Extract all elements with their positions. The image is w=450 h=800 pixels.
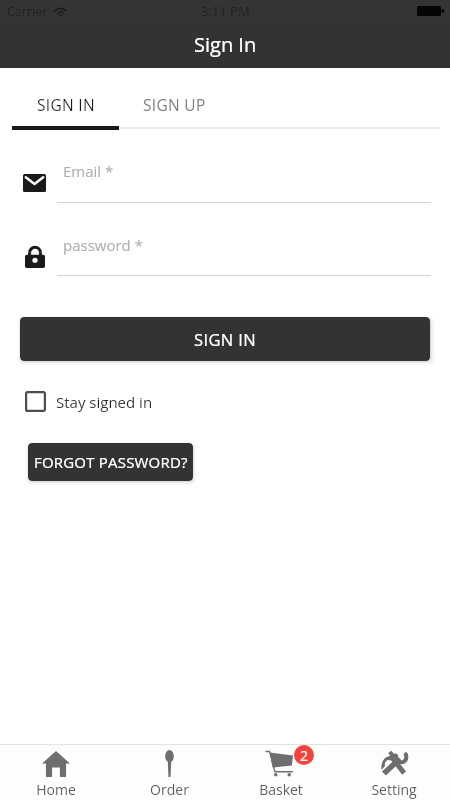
staticText: Order	[150, 780, 189, 799]
button[interactable]: Order	[113, 744, 225, 800]
staticText: 3:11 PM	[201, 2, 250, 20]
button[interactable]: Home	[0, 744, 112, 800]
staticText: Carrier	[7, 3, 48, 20]
button[interactable]: 2	[225, 744, 337, 800]
staticText: FORGOT PASSWORD?	[34, 452, 188, 472]
staticText: Home	[36, 780, 76, 799]
button[interactable]: Setting	[338, 744, 450, 800]
staticText: SIGN UP	[143, 94, 206, 115]
button[interactable]: SIGN IN	[20, 317, 430, 361]
staticText: 2	[300, 746, 309, 765]
staticText: Stay signed in	[56, 392, 153, 412]
staticText: Email *	[63, 161, 114, 181]
button[interactable]: SIGN IN	[12, 75, 119, 133]
staticText: Sign In	[194, 31, 257, 58]
button[interactable]: Stay signed in	[25, 391, 153, 412]
staticText: password *	[63, 235, 143, 255]
staticText: Basket	[259, 780, 303, 799]
staticText: SIGN IN	[37, 94, 95, 115]
button[interactable]: SIGN UP	[120, 75, 228, 133]
staticText: Setting	[371, 780, 417, 799]
staticText: SIGN IN	[194, 328, 257, 350]
button[interactable]: FORGOT PASSWORD?	[28, 443, 193, 481]
